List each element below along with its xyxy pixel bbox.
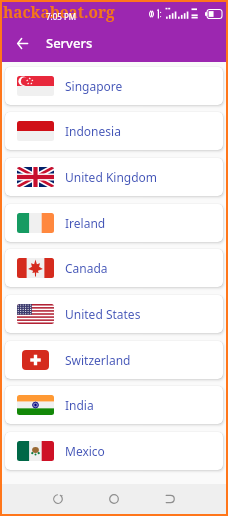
button[interactable]: Recents (44, 485, 72, 513)
button[interactable]: India (5, 386, 223, 424)
button[interactable]: Singapore (5, 67, 223, 105)
button[interactable]: United States (5, 295, 223, 333)
button[interactable]: Indonesia (5, 112, 223, 150)
button[interactable]: Back (156, 485, 184, 513)
staticText: Ireland (65, 215, 106, 231)
staticText: Indonesia (65, 123, 121, 139)
staticText: hackabeat.org (3, 2, 115, 23)
staticText: Servers (46, 34, 93, 52)
button[interactable]: Mexico (5, 432, 223, 470)
staticText: India (65, 397, 94, 413)
button[interactable]: Canada (5, 249, 223, 287)
button[interactable]: Switzerland (5, 341, 223, 379)
staticText: Canada (65, 260, 108, 276)
staticText: Switzerland (65, 352, 131, 368)
staticText: Singapore (65, 78, 123, 94)
staticText: United States (65, 306, 141, 322)
button[interactable]: Home (100, 485, 128, 513)
staticText: United Kingdom (65, 169, 158, 185)
button[interactable]: Ireland (5, 204, 223, 242)
staticText: 7:05 PM (46, 11, 77, 22)
button[interactable]: Back (8, 29, 36, 57)
staticText: Mexico (65, 443, 105, 459)
button[interactable]: United Kingdom (5, 158, 223, 196)
